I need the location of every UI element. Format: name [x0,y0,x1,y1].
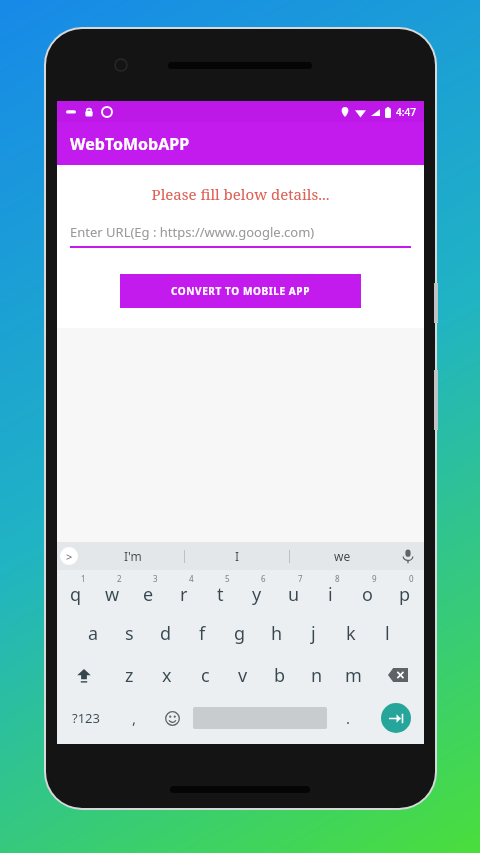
staticText: y [252,582,262,607]
button[interactable]: 9 [349,570,386,612]
button[interactable]: Backspace [372,654,424,696]
button[interactable]: b [261,654,298,696]
staticText: 6 [261,573,266,584]
button[interactable]: z [110,654,148,696]
staticText: l [385,621,390,646]
staticText: c [201,663,210,688]
staticText: i [328,582,333,607]
staticText: , [132,708,137,728]
staticText: WebToMobAPP [70,133,190,155]
staticText: 0 [409,573,414,584]
button[interactable]: x [148,654,186,696]
staticText: o [362,582,373,607]
button[interactable]: d [147,612,184,654]
staticText: Enter URL(Eg : https://www.google.com) [70,223,315,241]
button[interactable]: , [115,696,153,740]
button[interactable]: 5 [202,570,238,612]
button[interactable]: we [290,542,394,570]
staticText: n [311,663,323,688]
button[interactable]: a [75,612,111,654]
button[interactable]: h [258,612,295,654]
staticText: e [143,582,154,607]
staticText: b [274,663,286,688]
staticText: u [288,582,300,607]
staticText: 5 [225,573,230,584]
button[interactable]: 4 [166,570,202,612]
button[interactable]: ?123 [57,696,115,740]
button[interactable]: 1 [58,570,94,612]
staticText: 2 [117,573,122,584]
staticText: h [271,621,283,646]
staticText: v [238,663,248,688]
staticText: a [88,621,99,646]
staticText: s [125,621,134,646]
button[interactable]: m [335,654,372,696]
button[interactable]: v [224,654,261,696]
staticText: m [345,663,362,688]
button[interactable]: l [369,612,406,654]
button[interactable]: Voice input [400,548,416,564]
button[interactable]: Emoji [153,696,191,740]
staticText: q [70,582,82,607]
staticText: CONVERT TO MOBILE APP [171,284,310,298]
staticText: f [199,621,206,646]
button[interactable]: Enter URL(Eg : https://www.google.com) [70,223,411,248]
staticText: I'm [124,548,142,564]
staticText: I [235,548,240,564]
staticText: k [346,621,356,646]
staticText: ?123 [72,709,100,727]
staticText: g [234,621,246,646]
staticText: > [66,549,73,564]
button[interactable]: 6 [238,570,275,612]
button[interactable]: n [298,654,335,696]
staticText: we [334,548,351,564]
button[interactable]: 8 [312,570,349,612]
button[interactable]: Shift [57,654,110,696]
button[interactable]: 2 [94,570,130,612]
staticText: p [399,582,411,607]
staticText: 9 [372,573,377,584]
button[interactable]: 3 [130,570,166,612]
button[interactable]: I'm [81,542,184,570]
staticText: w [105,582,120,607]
staticText: . [346,708,351,728]
button[interactable]: g [221,612,258,654]
button[interactable]: I [185,542,289,570]
button[interactable]: 7 [275,570,312,612]
button[interactable]: k [332,612,369,654]
button[interactable]: Expand suggestions [60,547,78,565]
staticText: 8 [335,573,340,584]
staticText: j [311,621,316,646]
button[interactable]: 0 [386,570,423,612]
button[interactable]: . [329,696,367,740]
staticText: 3 [153,573,158,584]
button[interactable]: CONVERT TO MOBILE APP [120,274,361,308]
staticText: 4 [189,573,194,584]
staticText: z [125,663,134,688]
button[interactable]: Go [381,703,411,733]
staticText: d [160,621,172,646]
staticText: Please fill below details... [57,184,424,204]
button[interactable]: j [295,612,332,654]
staticText: r [180,582,188,607]
staticText: t [217,582,224,607]
button[interactable]: s [111,612,147,654]
button[interactable]: c [186,654,224,696]
staticText: x [162,663,172,688]
staticText: 7 [298,573,303,584]
button[interactable]: f [184,612,221,654]
staticText: 4:47 [396,105,416,119]
staticText: 1 [81,573,86,584]
